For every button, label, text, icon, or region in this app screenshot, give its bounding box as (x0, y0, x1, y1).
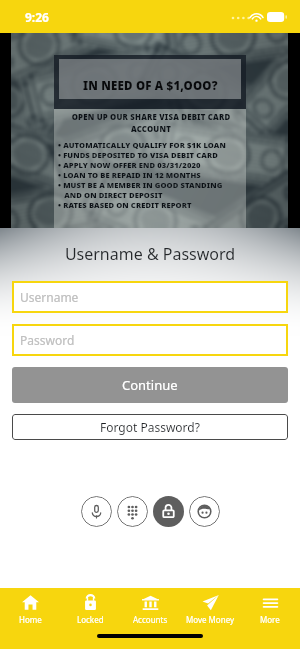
button[interactable]: Passcode login (153, 496, 184, 527)
button[interactable]: Forgot Password? (12, 414, 288, 440)
button[interactable]: Username (12, 281, 288, 313)
staticText: • FUNDS DEPOSITED TO VISA DEBIT CARD (58, 150, 218, 160)
staticText: 9:26 (25, 9, 49, 25)
staticText: Accounts (133, 614, 168, 625)
staticText: • APPLY NOW OFFER END 03/31/2020 (58, 160, 201, 170)
button[interactable]: Move Money (180, 594, 240, 625)
staticText: OPEN UP OUR SHARE VISA DEBIT CARD ACCOUN… (58, 112, 244, 135)
staticText: • LOAN TO BE REPAID IN 12 MONTHS (58, 170, 201, 180)
button[interactable]: Continue (12, 367, 288, 403)
staticText: • AUTOMATICALLY QUALIFY FOR $1K LOAN (58, 140, 226, 150)
staticText: IN NEED OF A $1,OOO? (83, 78, 218, 94)
button[interactable]: Face login (189, 496, 220, 527)
button[interactable]: PIN keypad (117, 496, 148, 527)
staticText: More (260, 614, 280, 625)
staticText: Password (20, 332, 75, 348)
staticText: Forgot Password? (100, 419, 200, 435)
button[interactable]: Voice login (81, 496, 112, 527)
staticText: Username (20, 289, 79, 305)
button[interactable]: More (240, 594, 300, 625)
staticText: Move Money (186, 614, 235, 625)
button[interactable]: Locked (60, 594, 120, 625)
staticText: Home (19, 614, 42, 625)
button[interactable]: Accounts (120, 594, 180, 625)
staticText: Username & Password (12, 243, 288, 265)
staticText: • MUST BE A MEMBER IN GOOD STANDING (58, 180, 223, 190)
staticText: • RATES BASED ON CREDIT REPORT (58, 200, 192, 210)
staticText: Locked (77, 614, 104, 625)
button[interactable]: Password (12, 324, 288, 356)
staticText: AND ON DIRECT DEPOSIT (58, 190, 163, 200)
button[interactable]: Home (0, 594, 60, 625)
staticText: Continue (122, 376, 178, 394)
